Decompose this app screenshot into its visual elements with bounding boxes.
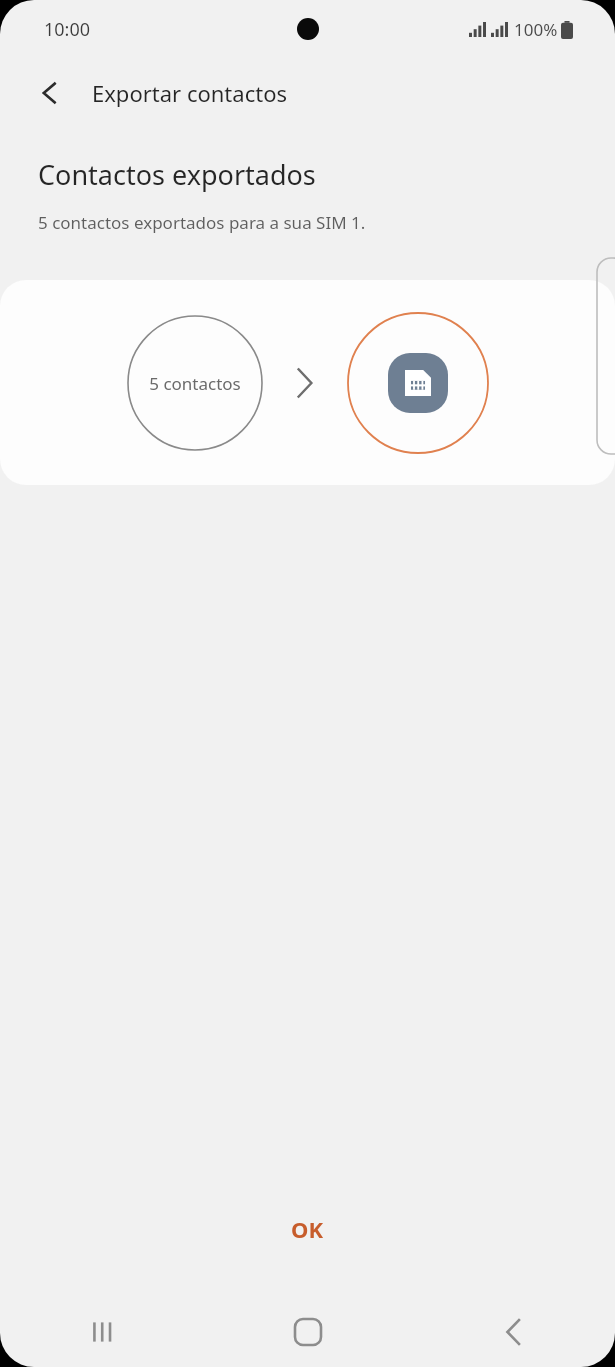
staticText: 5 contactos: [149, 372, 241, 395]
staticText: 100%: [514, 18, 558, 41]
button[interactable]: OK: [0, 1199, 615, 1259]
button[interactable]: Voltar: [410, 1297, 615, 1367]
staticText: Contactos exportados: [38, 156, 316, 193]
button[interactable]: Início: [205, 1297, 410, 1367]
staticText: 5 contactos exportados para a sua SIM 1.: [38, 211, 366, 234]
staticText: OK: [291, 1214, 324, 1244]
button[interactable]: Recentes: [0, 1297, 205, 1367]
staticText: 10:00: [44, 17, 91, 42]
staticText: Exportar contactos: [92, 78, 287, 108]
button[interactable]: Voltar: [26, 69, 74, 117]
button[interactable]: 5 contactos: [0, 280, 615, 485]
